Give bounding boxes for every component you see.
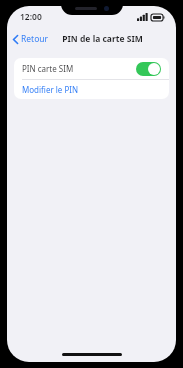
button[interactable]: Activer le PIN de la carte SIM [136, 62, 161, 76]
button[interactable]: Retour [7, 30, 55, 48]
staticText: 12:00 [20, 11, 42, 23]
button[interactable]: PIN carte SIM [14, 58, 169, 79]
staticText: PIN de la carte SIM [62, 33, 143, 45]
staticText: Retour [21, 33, 49, 45]
button[interactable]: Modifier le PIN [14, 80, 169, 99]
staticText: Modifier le PIN [22, 84, 79, 95]
staticText: PIN carte SIM [22, 63, 74, 74]
